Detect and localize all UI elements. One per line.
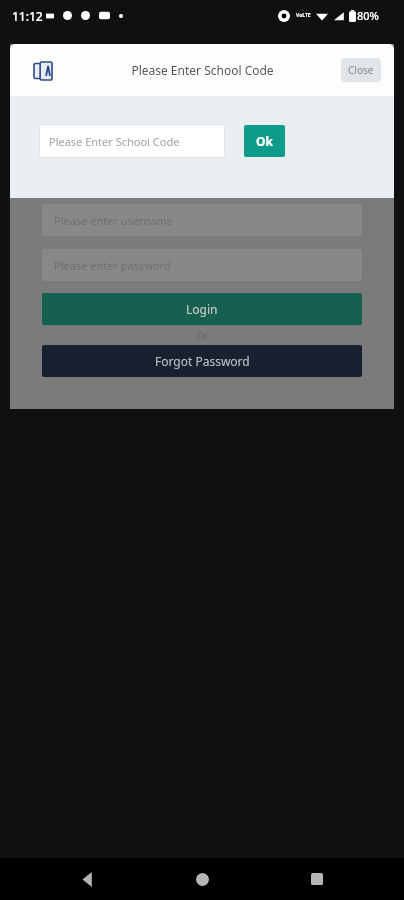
staticText: Forgot Password bbox=[155, 353, 250, 369]
staticText: Please enter password bbox=[54, 258, 171, 273]
staticText: Please Enter School Code bbox=[131, 62, 274, 78]
button[interactable]: Please enter username bbox=[42, 204, 362, 236]
staticText: Please Enter School Code bbox=[49, 134, 180, 149]
staticText: 80% bbox=[357, 8, 379, 23]
button[interactable]: Please enter password bbox=[42, 249, 362, 281]
staticText: Close bbox=[348, 63, 374, 77]
staticText: Ok bbox=[256, 133, 273, 149]
staticText: Or bbox=[197, 329, 208, 341]
button[interactable]: Home bbox=[175, 858, 229, 900]
button[interactable]: Please Enter School Code bbox=[39, 124, 225, 158]
button[interactable]: Recent apps bbox=[290, 858, 344, 900]
button[interactable]: Forgot Password bbox=[42, 345, 362, 377]
button[interactable]: Close bbox=[341, 58, 381, 82]
button[interactable]: Back bbox=[61, 858, 115, 900]
staticText: VoLTE bbox=[296, 12, 311, 19]
button[interactable]: Login bbox=[42, 293, 362, 325]
staticText: 11:12 bbox=[12, 8, 43, 24]
staticText: Login bbox=[186, 301, 218, 317]
staticText: Please enter username bbox=[54, 213, 174, 228]
button[interactable]: Ok bbox=[244, 125, 285, 157]
